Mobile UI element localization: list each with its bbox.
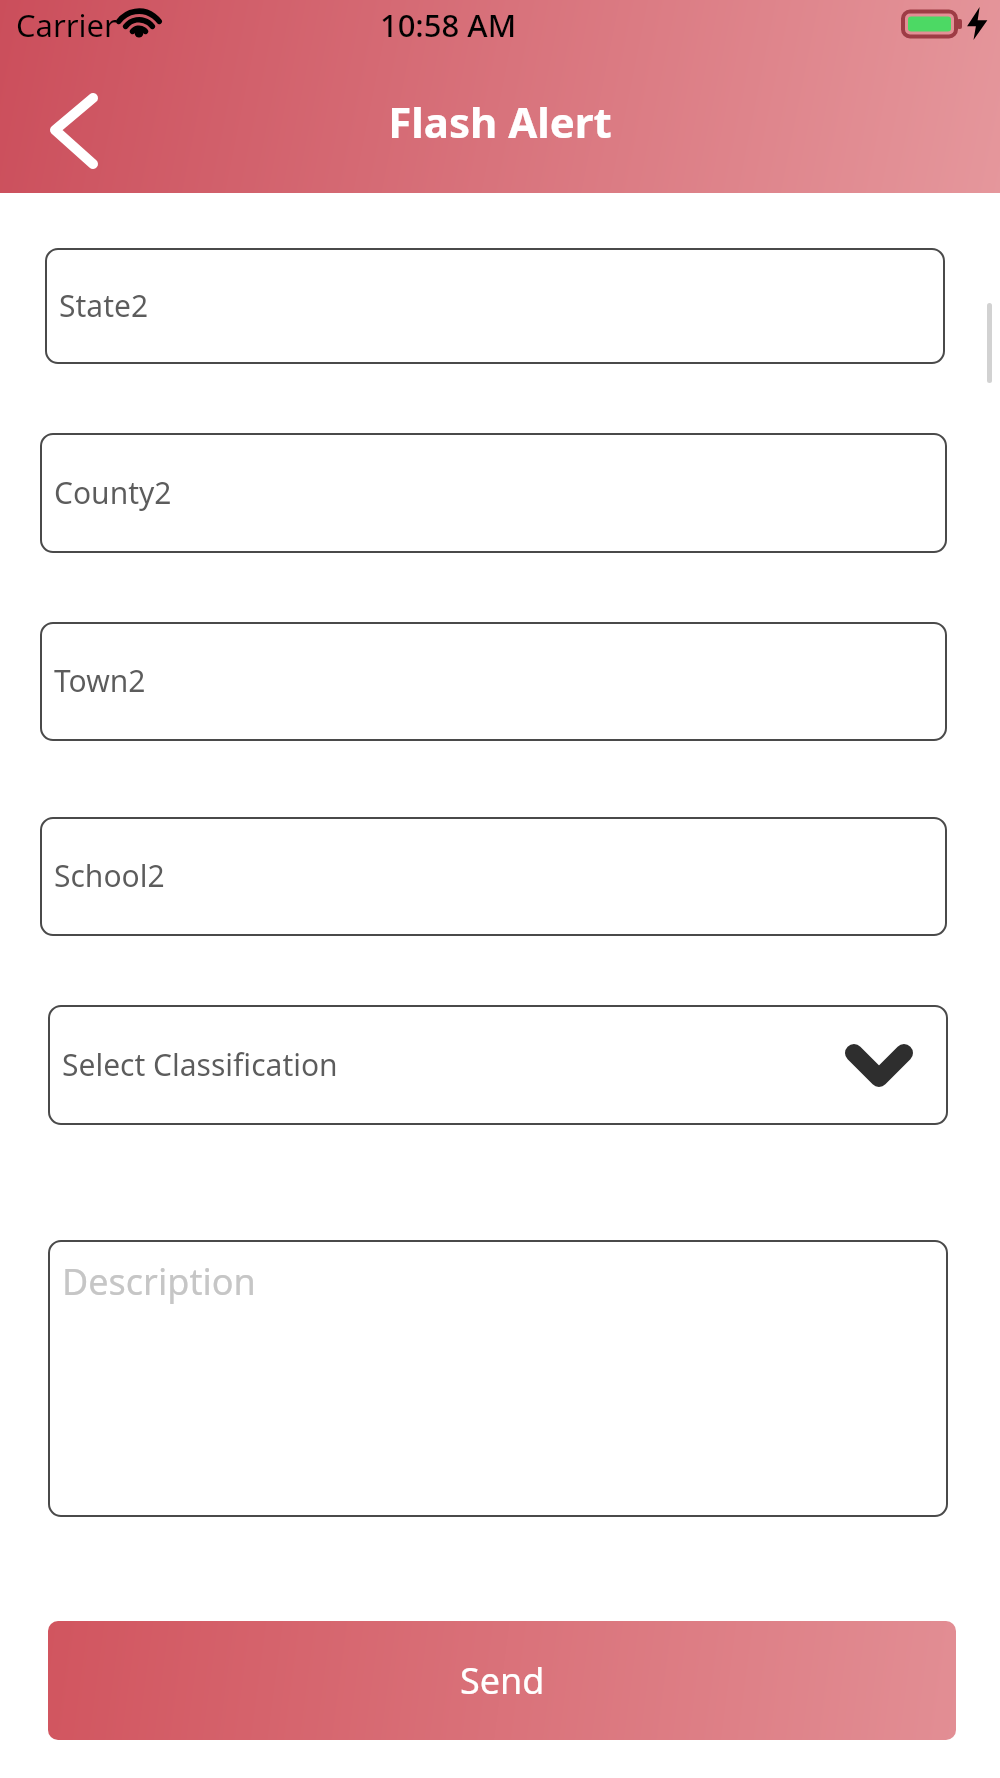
button[interactable]: Back — [28, 80, 128, 180]
staticText: County2 — [54, 472, 172, 513]
staticText: 10:58 AM — [298, 4, 598, 46]
staticText: Flash Alert — [0, 93, 1000, 150]
staticText: Town2 — [54, 660, 146, 701]
button[interactable]: Description — [48, 1240, 948, 1517]
staticText: Select Classification — [62, 1044, 338, 1085]
button[interactable]: Send — [48, 1621, 956, 1740]
staticText: School2 — [54, 855, 165, 896]
button[interactable]: County2 — [40, 433, 947, 553]
button[interactable]: Select Classification — [48, 1005, 948, 1125]
button[interactable]: Town2 — [40, 622, 947, 741]
button[interactable]: State2 — [45, 248, 945, 364]
staticText: Description — [62, 1257, 256, 1306]
staticText: State2 — [59, 285, 149, 326]
staticText: Carrier — [16, 4, 117, 46]
staticText: Send — [460, 1656, 545, 1705]
button[interactable]: School2 — [40, 817, 947, 936]
